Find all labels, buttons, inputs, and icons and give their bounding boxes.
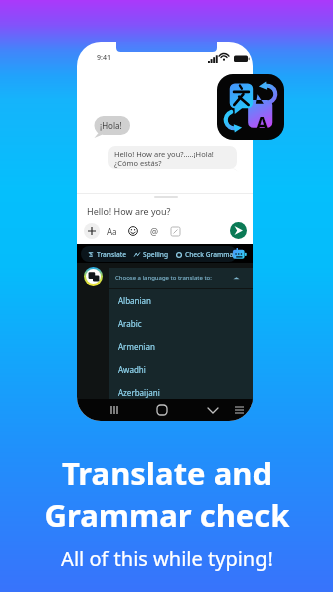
staticText: Translate and xyxy=(62,452,272,494)
button[interactable]: Arabic xyxy=(109,312,253,335)
button[interactable]: Azerbaijani xyxy=(109,381,253,404)
button[interactable]: Assistant xyxy=(232,248,247,261)
staticText: All of this while typing! xyxy=(61,545,273,572)
staticText: Hello! How are you? xyxy=(87,205,171,217)
button[interactable]: Aa xyxy=(104,223,120,239)
button[interactable]: Awadhi xyxy=(109,358,253,381)
button[interactable]: Emoji xyxy=(125,223,141,239)
staticText: Azerbaijani xyxy=(118,387,160,398)
staticText: ¡Hola! xyxy=(100,120,122,131)
button[interactable]: Spelling xyxy=(134,250,169,259)
staticText: Check Grammar xyxy=(185,250,237,259)
staticText: A xyxy=(256,111,269,128)
button[interactable]: Translate xyxy=(88,250,127,259)
staticText: Hello! How are you?.....¡Hola! ¿Cómo est… xyxy=(114,149,214,169)
button[interactable]: Choose a language to translate to: xyxy=(109,268,253,288)
button[interactable]: Translate app xyxy=(217,74,284,140)
staticText: Aa xyxy=(107,226,117,237)
button[interactable]: Sticker xyxy=(167,223,183,239)
staticText: Spelling xyxy=(143,250,169,259)
button[interactable]: Mention xyxy=(146,223,162,239)
button[interactable]: Albanian xyxy=(109,289,253,312)
button[interactable]: Armenian xyxy=(109,335,253,358)
staticText: Albanian xyxy=(118,295,152,306)
staticText: Grammar check xyxy=(44,494,290,536)
staticText: Arabic xyxy=(118,318,142,329)
staticText: Awadhi xyxy=(118,364,146,375)
button[interactable]: Send xyxy=(230,222,247,239)
button[interactable]: Add xyxy=(84,223,100,239)
staticText: Armenian xyxy=(118,341,155,352)
staticText: Choose a language to translate to: xyxy=(115,274,212,282)
staticText: @ xyxy=(150,225,159,237)
staticText: 9:41 xyxy=(97,53,111,63)
staticText: Translate xyxy=(97,250,127,259)
button[interactable]: Check Grammar xyxy=(176,250,237,259)
button[interactable]: Profile xyxy=(84,267,103,286)
